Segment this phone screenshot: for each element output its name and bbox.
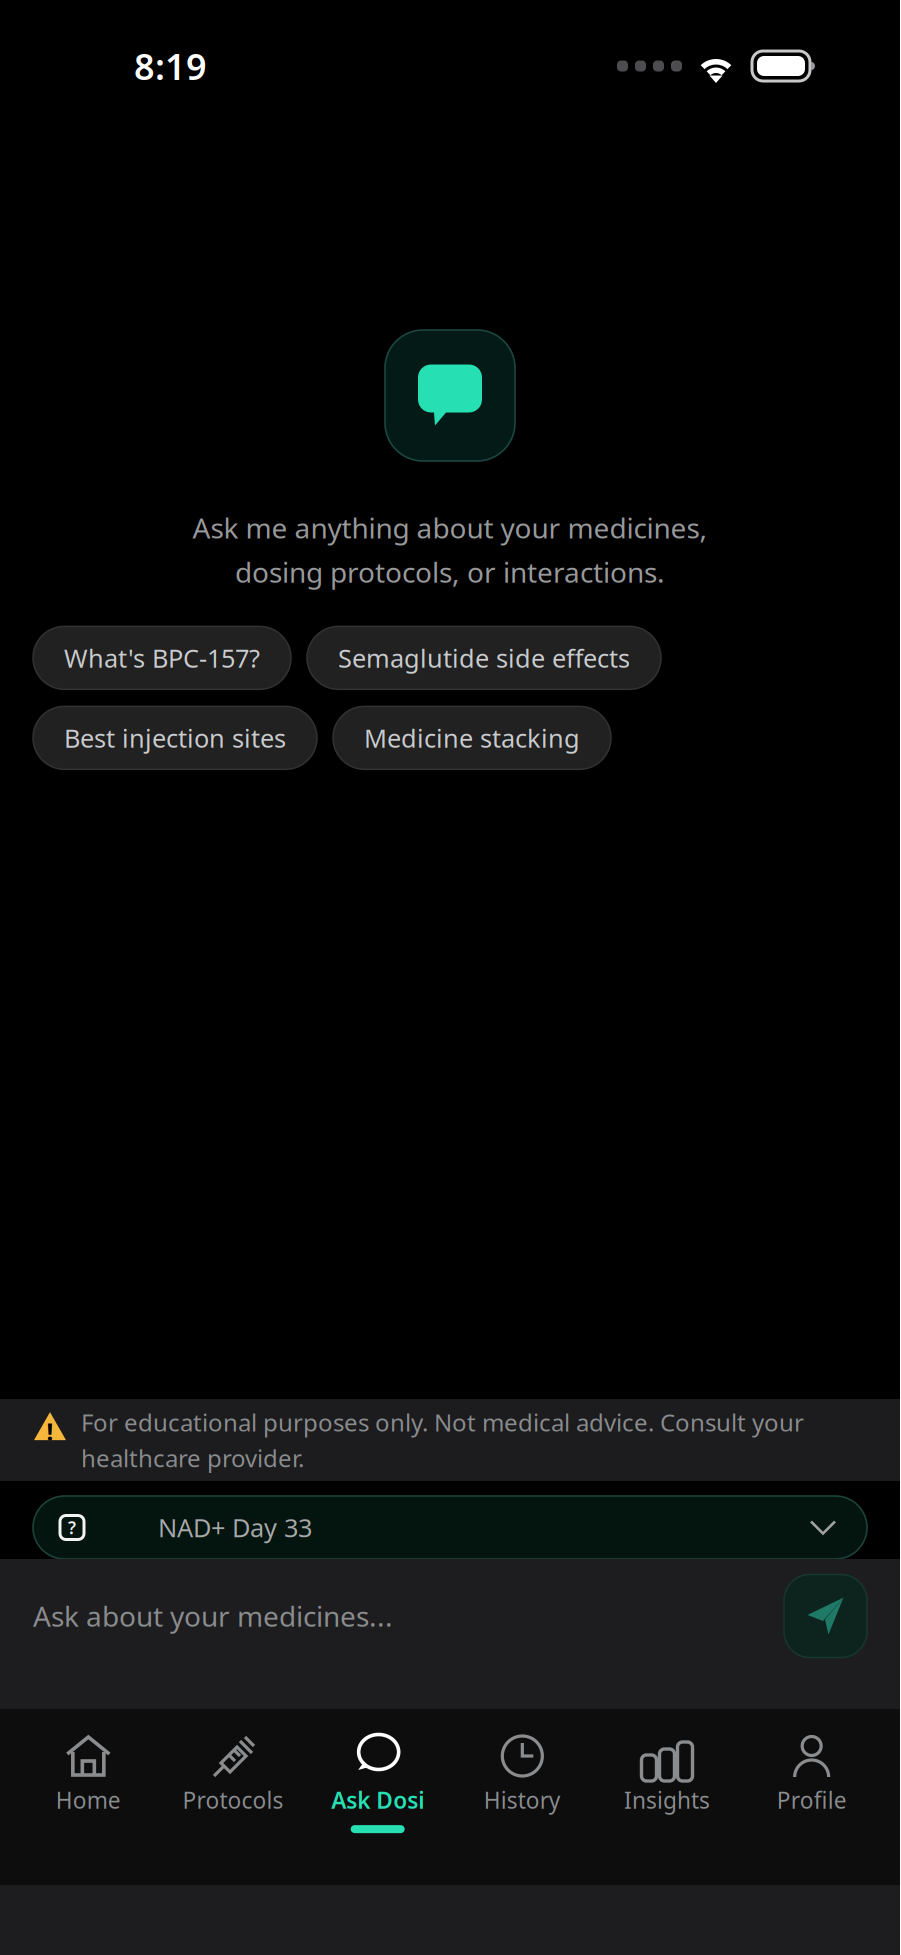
staticText: For educational purposes only. Not medic… (81, 1406, 804, 1438)
staticText: ? (68, 1516, 76, 1539)
staticText: healthcare provider. (81, 1442, 304, 1474)
staticText: NAD+ Day 33 (158, 1511, 312, 1544)
button[interactable]: Send (784, 1574, 867, 1657)
button[interactable]: What's BPC-157? (33, 626, 291, 689)
staticText: Profile (777, 1785, 847, 1815)
button[interactable]: Ask Dosi (305, 1709, 450, 1885)
staticText: Ask Dosi (331, 1785, 424, 1815)
button[interactable]: Semaglutide side effects (307, 626, 661, 689)
staticText: Semaglutide side effects (338, 641, 630, 675)
staticText: History (484, 1785, 561, 1815)
staticText: Insights (624, 1785, 710, 1815)
button[interactable]: Profile (739, 1709, 884, 1885)
button[interactable]: Home (16, 1709, 161, 1885)
staticText: 8:19 (134, 42, 207, 90)
staticText: What's BPC-157? (64, 641, 260, 675)
button[interactable]: Best injection sites (33, 706, 317, 769)
staticText: Ask me anything about your medicines, (192, 509, 707, 546)
staticText: Medicine stacking (364, 721, 580, 755)
staticText: Best injection sites (64, 721, 286, 755)
staticText: Protocols (182, 1785, 283, 1815)
button[interactable]: History (450, 1709, 595, 1885)
button[interactable]: Protocols (161, 1709, 305, 1885)
staticText: dosing protocols, or interactions. (235, 553, 665, 590)
button[interactable]: Insights (595, 1709, 739, 1885)
staticText: Ask about your medicines... (33, 1597, 393, 1635)
button[interactable]: ? (33, 1496, 867, 1559)
staticText: ! (46, 1415, 53, 1447)
button[interactable]: Medicine stacking (333, 706, 611, 769)
staticText: Home (56, 1785, 121, 1815)
